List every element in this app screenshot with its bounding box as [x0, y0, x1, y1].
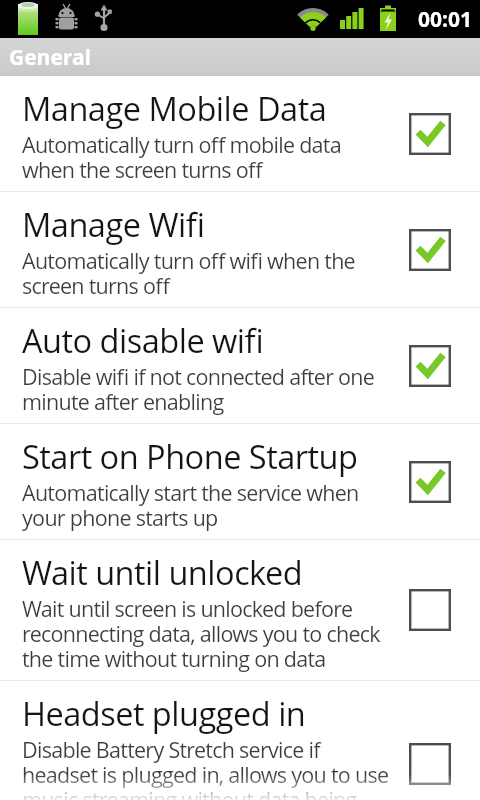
staticText: 00:01 — [418, 5, 472, 34]
staticText: General — [9, 43, 92, 72]
button[interactable]: Auto disable wifi — [0, 308, 480, 423]
staticText: your phone starts up — [22, 503, 218, 532]
button[interactable]: Unchecked — [409, 743, 451, 785]
button[interactable]: Checked — [409, 461, 451, 503]
button[interactable]: Start on Phone Startup — [0, 424, 480, 539]
staticText: Automatically start the service when — [22, 478, 359, 507]
button[interactable]: Checked — [409, 113, 451, 155]
staticText: Disable Battery Stretch service if — [22, 735, 320, 764]
staticText: Auto disable wifi — [22, 318, 264, 362]
staticText: Automatically turn off wifi when the — [22, 246, 355, 275]
staticText: the time without turning on data — [22, 644, 326, 673]
button[interactable]: Checked — [409, 229, 451, 271]
staticText: Manage Mobile Data — [22, 86, 327, 130]
staticText: reconnecting data, allows you to check — [22, 619, 380, 648]
button[interactable]: Checked — [409, 345, 451, 387]
button[interactable]: Manage Mobile Data — [0, 76, 480, 191]
staticText: screen turns off — [22, 271, 170, 300]
staticText: when the screen turns off — [22, 155, 262, 184]
button[interactable]: Unchecked — [409, 589, 451, 631]
staticText: Disable wifi if not connected after one — [22, 362, 375, 391]
staticText: Automatically turn off mobile data — [22, 130, 341, 159]
staticText: Headset plugged in — [22, 691, 306, 735]
staticText: headset is plugged in, allows you to use — [22, 760, 389, 789]
staticText: music streaming without data being — [22, 785, 357, 800]
button[interactable]: Manage Wifi — [0, 192, 480, 307]
staticText: Wait until screen is unlocked before — [22, 594, 353, 623]
button[interactable]: Wait until unlocked — [0, 540, 480, 680]
staticText: Wait until unlocked — [22, 550, 303, 594]
button[interactable]: Headset plugged in — [0, 681, 480, 800]
staticText: minute after enabling — [22, 387, 224, 416]
staticText: Manage Wifi — [22, 202, 205, 246]
staticText: Start on Phone Startup — [22, 434, 358, 478]
